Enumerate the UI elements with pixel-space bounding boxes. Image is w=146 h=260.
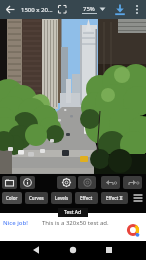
staticText: Nice job! <box>3 219 28 227</box>
button[interactable] <box>123 176 142 189</box>
button[interactable] <box>131 192 144 204</box>
button[interactable]: Nice job! <box>0 213 146 241</box>
staticText: Effect <box>80 195 93 201</box>
button[interactable]: 75% <box>80 2 108 17</box>
button[interactable] <box>101 176 120 189</box>
button[interactable] <box>58 5 67 14</box>
button[interactable]: Effect <box>75 192 98 204</box>
button[interactable] <box>28 243 44 257</box>
button[interactable] <box>113 3 127 16</box>
button[interactable] <box>131 3 143 16</box>
button[interactable]: Levels <box>51 192 72 204</box>
staticText: Color <box>6 195 18 201</box>
staticText: This is a 320x50 test ad. <box>42 219 109 227</box>
button[interactable] <box>57 176 76 189</box>
button[interactable] <box>65 243 81 257</box>
button[interactable] <box>101 243 117 257</box>
staticText: Curves <box>29 195 44 201</box>
button[interactable]: Effect II <box>101 192 128 204</box>
button[interactable] <box>78 176 96 189</box>
button[interactable] <box>4 3 17 16</box>
staticText: Test Ad <box>64 209 82 216</box>
staticText: 75% <box>83 5 95 13</box>
button[interactable] <box>20 176 35 189</box>
staticText: 1500 x 20... <box>21 6 53 14</box>
button[interactable]: Curves <box>25 192 48 204</box>
staticText: Effect II <box>106 195 123 201</box>
button[interactable]: Color <box>2 192 22 204</box>
staticText: Levels <box>55 195 69 201</box>
button[interactable] <box>2 176 17 189</box>
